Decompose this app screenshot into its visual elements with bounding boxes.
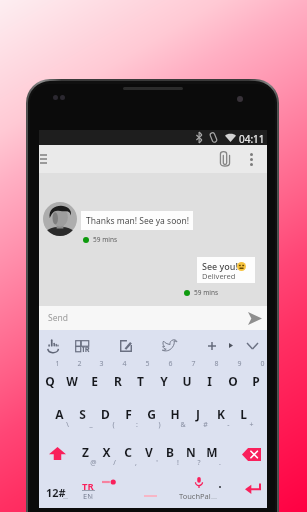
staticText: ! — [177, 458, 179, 468]
button[interactable]: Compose — [115, 332, 137, 359]
button[interactable]: Z — [75, 431, 96, 469]
button[interactable]: C — [117, 431, 138, 469]
staticText: 59 mins — [93, 235, 118, 244]
staticText: 7 — [191, 359, 196, 369]
button[interactable]: 5 — [129, 357, 152, 393]
staticText: @ — [90, 458, 97, 468]
button[interactable]: A — [47, 393, 71, 431]
button[interactable]: Twitter — [158, 332, 180, 359]
staticText: R — [114, 373, 122, 389]
button[interactable]: G — [140, 393, 163, 431]
staticText: Thanks man! See ya soon! — [86, 215, 189, 227]
button[interactable]: Shift — [39, 431, 77, 469]
button[interactable]: 12# — [41, 469, 71, 508]
button[interactable]: F — [117, 393, 140, 431]
staticText: O — [228, 373, 238, 389]
staticText: B — [166, 444, 174, 460]
button[interactable]: Backspace — [233, 431, 267, 469]
staticText: , — [135, 458, 137, 468]
button[interactable]: TouchPal — [139, 469, 259, 508]
staticText: C — [124, 444, 132, 460]
staticText: 3 — [99, 359, 104, 369]
staticText: _ — [89, 420, 93, 430]
staticText: / — [113, 458, 116, 468]
staticText: Z — [82, 444, 89, 460]
staticText: I — [207, 373, 212, 389]
button[interactable]: Menu — [39, 145, 55, 173]
button[interactable]: N — [180, 431, 201, 469]
staticText: K — [217, 406, 225, 422]
button[interactable]: B — [159, 431, 180, 469]
staticText: ? — [197, 458, 201, 468]
button[interactable]: 8 — [198, 357, 221, 393]
staticText: V — [145, 444, 153, 460]
button[interactable]: 2 — [61, 357, 83, 393]
staticText: See you! — [202, 260, 238, 272]
staticText: M — [206, 444, 218, 460]
button[interactable]: See you! — [197, 257, 255, 283]
button[interactable]: Enter — [235, 469, 267, 508]
staticText: A — [55, 406, 64, 422]
button[interactable]: More — [221, 332, 241, 359]
button[interactable]: H — [163, 393, 186, 431]
button[interactable]: TR — [71, 469, 97, 508]
staticText: TR — [82, 480, 94, 493]
staticText: ) — [158, 420, 161, 430]
button[interactable]: X — [96, 431, 117, 469]
button[interactable]: Language toggle — [102, 478, 116, 486]
staticText: TouchPal — [179, 491, 211, 501]
button[interactable]: More options — [242, 145, 260, 173]
staticText: X — [102, 444, 111, 460]
staticText: - — [227, 420, 230, 430]
staticText: EN — [83, 491, 93, 501]
staticText: 04:11 — [239, 132, 265, 146]
staticText: Send — [48, 312, 68, 324]
button[interactable]: 0 — [244, 357, 267, 393]
staticText: : — [136, 420, 138, 430]
staticText: F — [125, 406, 132, 422]
staticText: 5 — [145, 359, 150, 369]
button[interactable]: 3 — [83, 357, 106, 393]
button[interactable]: Collapse keyboard — [241, 332, 263, 359]
button[interactable]: D — [94, 393, 117, 431]
staticText: + — [249, 420, 254, 430]
button[interactable]: Thanks man! See ya soon! — [81, 211, 193, 230]
staticText: 9 — [237, 359, 242, 369]
button[interactable]: K — [209, 393, 232, 431]
staticText: 2 — [77, 359, 82, 369]
staticText: J — [196, 406, 200, 422]
button[interactable]: 9 — [221, 357, 244, 393]
staticText: 1 — [55, 359, 60, 369]
staticText: G — [147, 406, 156, 422]
button[interactable]: S — [71, 393, 94, 431]
staticText: 12# — [46, 485, 66, 500]
staticText: ' — [156, 458, 158, 468]
staticText: N — [186, 444, 196, 460]
button[interactable]: M — [201, 431, 222, 469]
staticText: 8 — [214, 359, 219, 369]
button[interactable]: Contact avatar — [43, 202, 77, 236]
staticText: & — [180, 420, 186, 430]
staticText: \ — [66, 420, 69, 430]
button[interactable]: 6 — [152, 357, 175, 393]
button[interactable]: Gesture typing — [42, 332, 64, 359]
button[interactable]: J — [186, 393, 209, 431]
staticText: # — [203, 420, 208, 430]
button[interactable]: 4 — [106, 357, 129, 393]
button[interactable]: 7 — [175, 357, 198, 393]
button[interactable]: 1 — [39, 357, 61, 393]
button[interactable]: Keyboard layout — [71, 332, 93, 359]
button[interactable]: Add — [201, 332, 223, 359]
staticText: Q — [45, 373, 55, 389]
staticText: T — [137, 373, 144, 389]
staticText: L — [240, 406, 247, 422]
staticText: W — [66, 373, 78, 389]
button[interactable]: Attach file — [213, 145, 237, 173]
button[interactable]: Send message — [243, 306, 267, 330]
staticText: H — [170, 406, 180, 422]
staticText: D — [101, 406, 110, 422]
staticText: . — [219, 458, 221, 468]
staticText: 59 mins — [194, 288, 219, 297]
button[interactable]: V — [138, 431, 159, 469]
button[interactable]: L — [232, 393, 255, 431]
